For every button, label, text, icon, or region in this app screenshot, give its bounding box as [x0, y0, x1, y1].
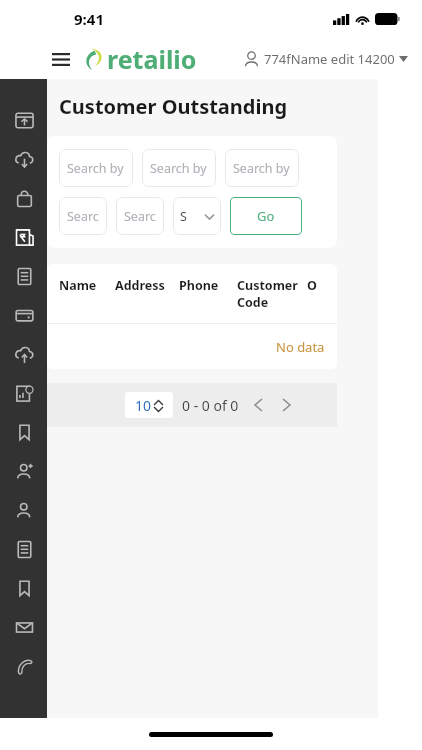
staticText: Search by [150, 160, 207, 177]
button[interactable]: Previous page [248, 395, 268, 415]
button[interactable]: Next page [276, 395, 296, 415]
staticText: retailio [107, 42, 197, 76]
button[interactable]: Call [5, 647, 43, 685]
button[interactable]: Mail [5, 608, 43, 646]
button[interactable]: Download [5, 140, 43, 178]
button[interactable]: Profile [5, 491, 43, 529]
button[interactable]: 10 [125, 392, 173, 418]
button[interactable]: Saved [5, 569, 43, 607]
staticText: No data [276, 338, 325, 356]
staticText: Go [257, 207, 275, 225]
button[interactable]: Search by [225, 149, 299, 187]
staticText: Phone [179, 277, 219, 294]
button[interactable]: Analytics [5, 374, 43, 412]
staticText: Searc [67, 208, 99, 225]
button[interactable]: Upload [5, 101, 43, 139]
button[interactable]: Orders [5, 179, 43, 217]
button[interactable]: Wallet [5, 296, 43, 334]
button[interactable]: Search by [142, 149, 216, 187]
button[interactable]: Documents [5, 530, 43, 568]
staticText: Address [115, 277, 165, 294]
staticText: 10 [135, 396, 152, 415]
staticText: Search by [67, 160, 124, 177]
staticText: Customer Code [237, 277, 299, 311]
staticText: Customer Outstanding [59, 93, 288, 120]
button[interactable]: Menu [50, 48, 72, 70]
button[interactable]: Go [230, 197, 302, 235]
staticText: Search by [233, 160, 290, 177]
button[interactable]: Searc [59, 197, 107, 235]
staticText: S [180, 208, 187, 225]
button[interactable]: S [173, 197, 221, 235]
staticText: 0 - 0 of 0 [182, 396, 239, 415]
button[interactable]: Payments [5, 218, 43, 256]
staticText: Searc [124, 208, 156, 225]
staticText: Name [59, 277, 97, 294]
button[interactable]: Reports [5, 257, 43, 295]
button[interactable]: Returns [5, 335, 43, 373]
button[interactable]: Search by [59, 149, 133, 187]
staticText: 774fName edit 14200 [264, 50, 395, 68]
button[interactable]: Add user [5, 452, 43, 490]
button[interactable]: 774fName edit 14200 [244, 50, 408, 68]
button[interactable]: Searc [116, 197, 164, 235]
staticText: 9:41 [74, 9, 104, 29]
staticText: O [307, 277, 317, 294]
button[interactable]: Bookmarks [5, 413, 43, 451]
